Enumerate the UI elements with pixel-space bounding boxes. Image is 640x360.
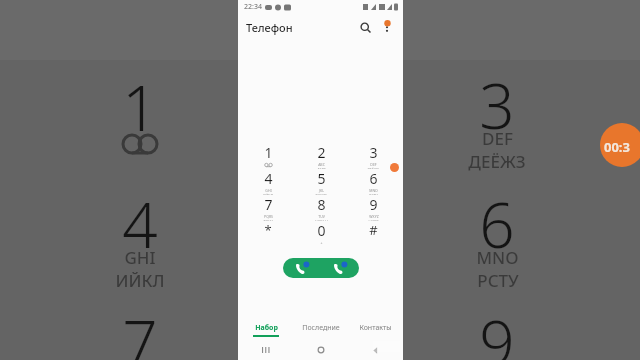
staticText: 22:34 (244, 2, 262, 12)
staticText: 2 (317, 143, 326, 162)
button[interactable]: Call with SIM 2 (321, 258, 359, 278)
staticText: GHI (124, 246, 156, 269)
staticText: РСТУ (477, 269, 519, 292)
staticText: Последние (302, 323, 340, 333)
button[interactable]: More options (378, 18, 396, 36)
staticText: 3 (369, 143, 378, 162)
staticText: МНОП (315, 193, 327, 195)
staticText: MNO (369, 188, 378, 193)
staticText: 9 (369, 195, 378, 214)
button[interactable]: Back (348, 340, 403, 360)
button[interactable]: 3 (350, 143, 396, 169)
staticText: 5 (317, 169, 326, 188)
staticText: ИЙКЛ (263, 193, 273, 195)
staticText: 4 (122, 182, 158, 266)
button[interactable]: Call with SIM 1 (283, 258, 321, 278)
staticText: WXYZ (369, 214, 379, 219)
button[interactable]: Контакты (348, 320, 403, 340)
staticText: РСТУ (369, 193, 378, 195)
staticText: TUV (318, 214, 325, 219)
button[interactable]: 0 (298, 221, 344, 247)
button[interactable]: # (350, 221, 396, 247)
staticText: DEF (370, 162, 377, 167)
staticText: Набор (255, 323, 278, 333)
staticText: 7 (122, 300, 158, 360)
staticText: 1 (264, 143, 273, 162)
staticText: 1 (122, 65, 158, 149)
staticText: + (320, 240, 323, 245)
staticText: * (264, 221, 272, 239)
staticText: Телефон (246, 20, 293, 35)
staticText: ИЙКЛ (115, 269, 165, 292)
staticText: ABC (318, 162, 325, 167)
staticText: 3 (479, 63, 515, 147)
staticText: 9 (479, 300, 515, 360)
button[interactable]: Набор (238, 320, 293, 340)
staticText: ШЩЪЫ (315, 219, 328, 221)
button[interactable]: 7 (245, 195, 291, 221)
button[interactable]: 2 (298, 143, 344, 169)
staticText: ДЕЁЖЗ (367, 167, 379, 169)
button[interactable]: Последние (293, 320, 348, 340)
staticText: ЬЭЮЯ (368, 219, 379, 221)
staticText: ДЕЁЖЗ (468, 150, 526, 173)
button[interactable]: 1 (245, 143, 291, 169)
staticText: MNO (476, 246, 519, 269)
staticText: 4 (264, 169, 273, 188)
staticText: ФХЦЧ (263, 219, 273, 221)
staticText: 8 (317, 195, 326, 214)
staticText: DEF (482, 127, 513, 150)
staticText: 6 (479, 182, 515, 266)
staticText: 0 (317, 221, 326, 240)
button[interactable]: * (245, 221, 291, 247)
staticText: PQRS (264, 214, 273, 219)
staticText: JKL (319, 188, 324, 193)
staticText: 7 (264, 195, 273, 214)
button[interactable]: 5 (298, 169, 344, 195)
button[interactable]: Recents (238, 340, 293, 360)
staticText: 6 (369, 169, 378, 188)
button[interactable]: 6 (350, 169, 396, 195)
button[interactable]: Home (293, 340, 348, 360)
staticText: АБВГ (317, 167, 326, 169)
staticText: 00:3 (604, 138, 630, 156)
staticText: # (369, 221, 378, 239)
staticText: GHI (265, 188, 272, 193)
button[interactable]: 9 (350, 195, 396, 221)
button[interactable]: Search (356, 18, 374, 36)
button[interactable]: 8 (298, 195, 344, 221)
staticText: Контакты (359, 323, 392, 333)
button[interactable]: 4 (245, 169, 291, 195)
